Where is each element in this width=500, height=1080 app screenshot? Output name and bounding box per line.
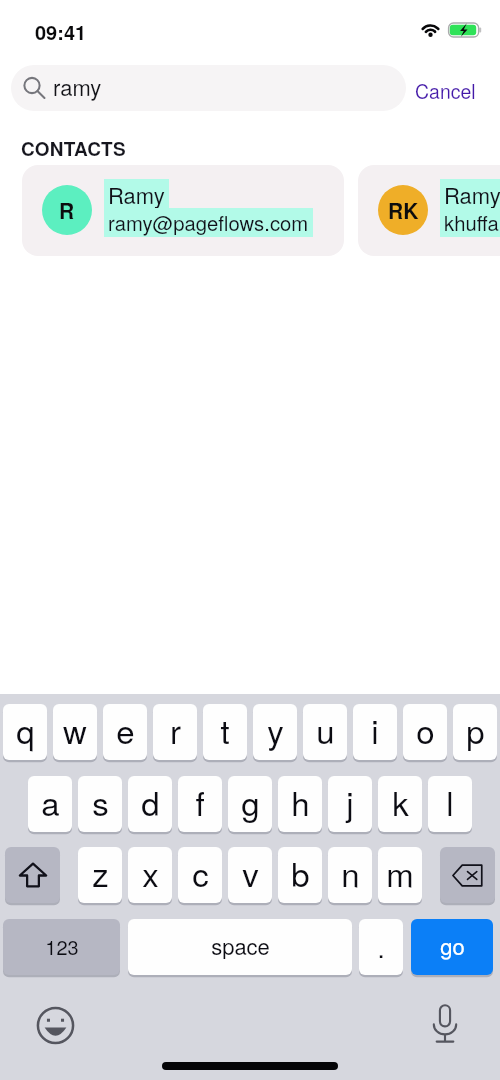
staticText: q — [16, 706, 35, 753]
button[interactable]: RK — [358, 165, 500, 256]
button[interactable]: Emoji keyboard — [36, 1006, 75, 1045]
staticText: i — [371, 706, 379, 753]
button[interactable]: space — [128, 919, 352, 975]
staticText: z — [92, 849, 109, 896]
staticText: y — [267, 706, 284, 753]
button[interactable]: z — [78, 847, 122, 903]
button[interactable]: r — [153, 704, 197, 760]
staticText: a — [41, 778, 60, 825]
button[interactable]: k — [378, 776, 422, 832]
button[interactable]: u — [303, 704, 347, 760]
button[interactable]: q — [3, 704, 47, 760]
staticText: R — [59, 195, 75, 225]
button[interactable]: e — [103, 704, 147, 760]
button[interactable]: n — [328, 847, 372, 903]
button[interactable]: go — [411, 919, 493, 975]
button[interactable]: d — [128, 776, 172, 832]
staticText: t — [220, 706, 230, 753]
staticText: c — [192, 849, 209, 896]
button[interactable]: t — [203, 704, 247, 760]
staticText: ramy@pageflows.com — [108, 208, 309, 237]
button[interactable]: R — [22, 165, 344, 256]
button[interactable]: p — [453, 704, 497, 760]
button[interactable]: m — [378, 847, 422, 903]
button[interactable]: ramy — [11, 65, 406, 111]
button[interactable]: f — [178, 776, 222, 832]
button[interactable]: Cancel — [415, 77, 476, 105]
staticText: j — [346, 778, 354, 825]
staticText: v — [242, 849, 259, 896]
staticText: Ramy — [108, 179, 165, 208]
button[interactable]: b — [278, 847, 322, 903]
button[interactable]: l — [428, 776, 472, 832]
button[interactable]: x — [128, 847, 172, 903]
staticText: d — [141, 778, 160, 825]
staticText: x — [142, 849, 159, 896]
button[interactable]: y — [253, 704, 297, 760]
staticText: 123 — [45, 932, 79, 961]
staticText: u — [316, 706, 335, 753]
button[interactable]: j — [328, 776, 372, 832]
staticText: h — [291, 778, 310, 825]
staticText: r — [170, 706, 181, 753]
button[interactable]: c — [178, 847, 222, 903]
staticText: n — [341, 849, 360, 896]
staticText: Ramy — [444, 179, 500, 208]
button[interactable]: a — [28, 776, 72, 832]
button[interactable]: w — [53, 704, 97, 760]
staticText: ramy — [53, 71, 102, 103]
button[interactable]: 123 — [3, 919, 120, 975]
button[interactable]: g — [228, 776, 272, 832]
staticText: l — [446, 778, 454, 825]
button[interactable]: . — [359, 919, 403, 975]
button[interactable]: s — [78, 776, 122, 832]
staticText: e — [116, 706, 135, 753]
staticText: w — [63, 706, 87, 753]
button[interactable]: Voice input — [426, 1000, 464, 1048]
button[interactable]: i — [353, 704, 397, 760]
staticText: space — [211, 930, 270, 962]
button[interactable]: Shift — [5, 847, 60, 903]
staticText: f — [195, 778, 205, 825]
staticText: o — [416, 706, 435, 753]
staticText: g — [241, 778, 260, 825]
staticText: khuffa — [444, 208, 499, 237]
staticText: p — [466, 706, 485, 753]
button[interactable]: v — [228, 847, 272, 903]
staticText: . — [377, 928, 385, 965]
staticText: m — [386, 849, 414, 896]
button[interactable]: o — [403, 704, 447, 760]
staticText: go — [440, 930, 465, 962]
staticText: CONTACTS — [21, 135, 126, 162]
staticText: k — [392, 778, 409, 825]
button[interactable]: h — [278, 776, 322, 832]
staticText: s — [92, 778, 109, 825]
button[interactable]: Backspace — [440, 847, 495, 903]
staticText: 09:41 — [35, 17, 87, 46]
staticText: RK — [388, 195, 419, 225]
staticText: b — [291, 849, 310, 896]
